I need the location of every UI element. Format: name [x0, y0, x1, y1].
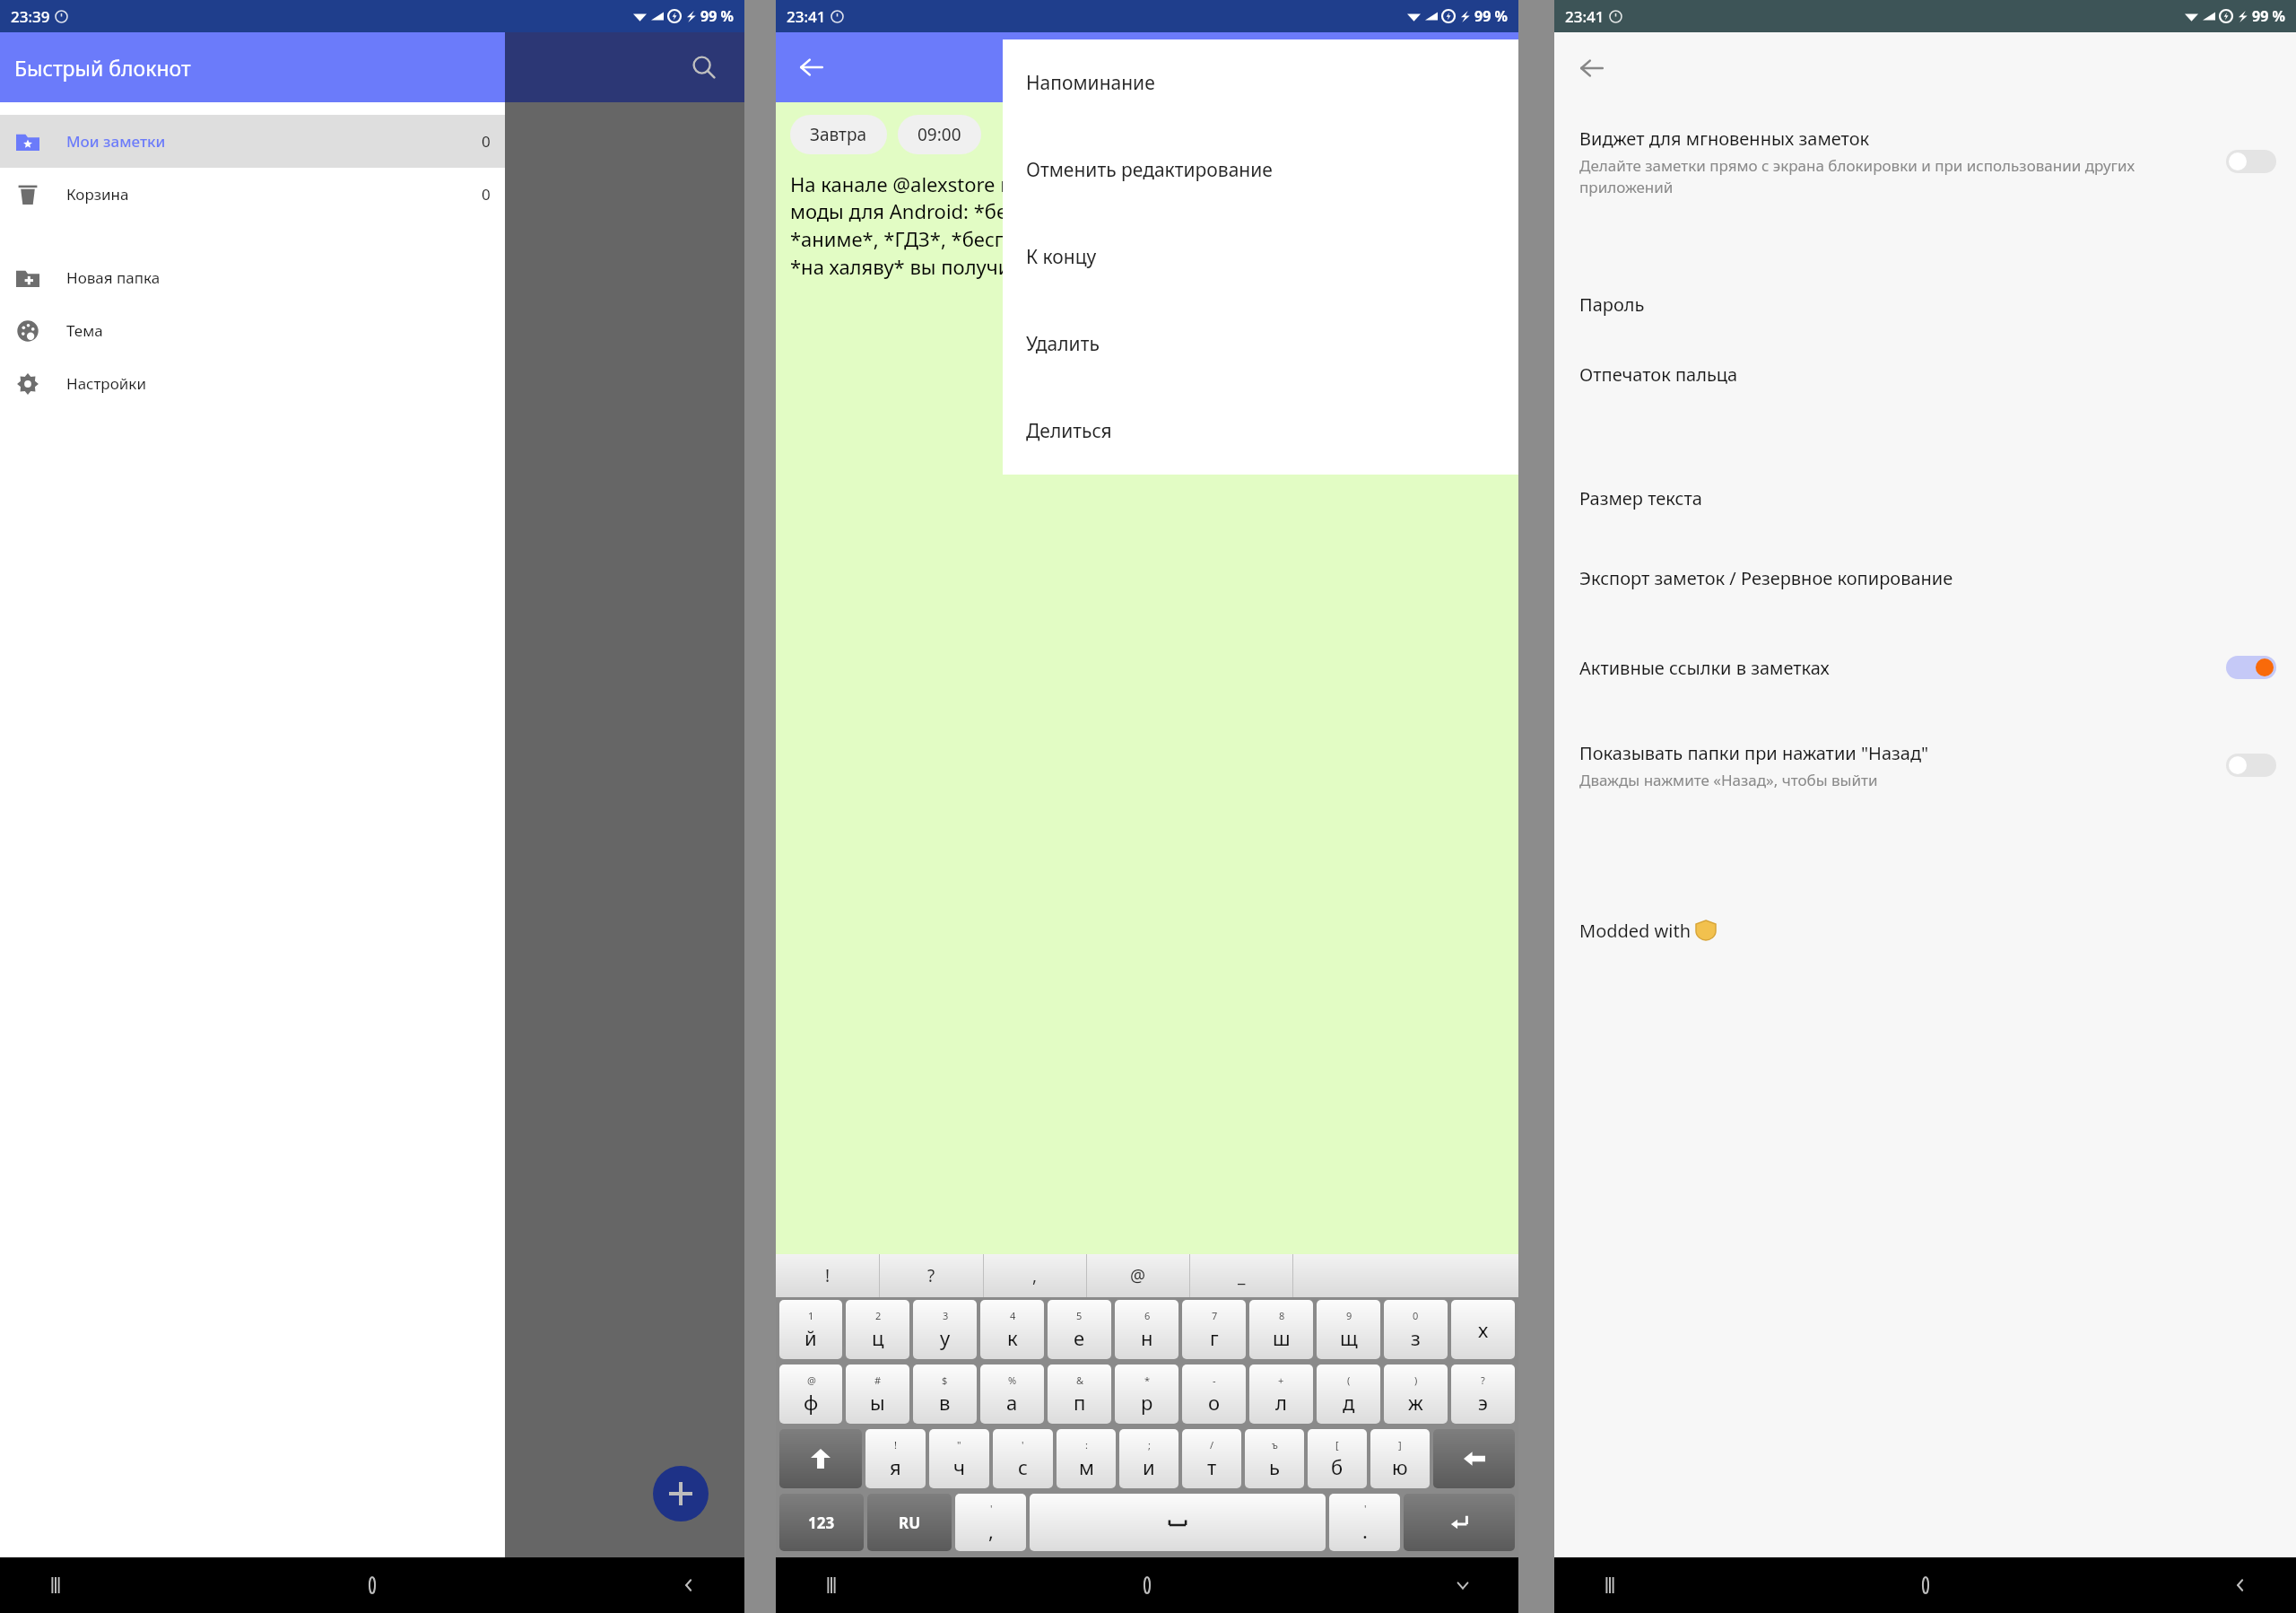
- staticText: #: [874, 1373, 882, 1387]
- button[interactable]: ': [993, 1429, 1053, 1488]
- staticText: з: [1411, 1324, 1421, 1351]
- button[interactable]: Отпечаток пальца: [1554, 339, 2296, 409]
- staticText: ж: [1408, 1389, 1423, 1416]
- button[interactable]: 7: [1182, 1300, 1246, 1359]
- button[interactable]: Удалить: [1003, 301, 1518, 388]
- button[interactable]: Back: [1572, 48, 1612, 88]
- button[interactable]: Key: [779, 1429, 862, 1488]
- staticText: 0: [1413, 1309, 1419, 1322]
- staticText: ': [990, 1502, 993, 1515]
- button[interactable]: Toggle: [2226, 150, 2276, 173]
- button[interactable]: (: [1317, 1365, 1380, 1424]
- button[interactable]: Home: [1127, 1565, 1167, 1605]
- button[interactable]: Back: [2221, 1565, 2260, 1605]
- button[interactable]: !: [776, 1254, 879, 1297]
- button[interactable]: Напоминание: [1003, 39, 1518, 126]
- staticText: 23:41: [1565, 6, 1605, 27]
- button[interactable]: Home: [1906, 1565, 1945, 1605]
- staticText: Показывать папки при нажатии "Назад": [1579, 741, 1929, 765]
- button[interactable]: #: [846, 1365, 909, 1424]
- button[interactable]: Настройки: [0, 357, 505, 410]
- button[interactable]: -: [1182, 1365, 1246, 1424]
- button[interactable]: Toggle: [2226, 656, 2276, 679]
- button[interactable]: $: [913, 1365, 977, 1424]
- button[interactable]: Back: [792, 48, 831, 87]
- button[interactable]: 9: [1317, 1300, 1380, 1359]
- button[interactable]: Key: [867, 1494, 952, 1551]
- staticText: 6: [1144, 1309, 1151, 1322]
- button[interactable]: Пароль: [1554, 269, 2296, 339]
- button[interactable]: Размер текста: [1554, 463, 2296, 533]
- button[interactable]: ': [955, 1494, 1026, 1551]
- button[interactable]: !: [865, 1429, 926, 1488]
- staticText: п: [1074, 1389, 1086, 1416]
- button[interactable]: Recents: [1590, 1565, 1630, 1605]
- button[interactable]: _: [1190, 1254, 1292, 1297]
- button[interactable]: Recents: [36, 1565, 75, 1605]
- button[interactable]: Back: [669, 1565, 709, 1605]
- button[interactable]: ": [929, 1429, 989, 1488]
- button[interactable]: @: [779, 1365, 842, 1424]
- button[interactable]: Экспорт заметок / Резервное копирование: [1554, 533, 2296, 623]
- button[interactable]: Отменить редактирование: [1003, 126, 1518, 214]
- staticText: 9: [1346, 1309, 1352, 1322]
- staticText: 5: [1076, 1309, 1083, 1322]
- button[interactable]: Search: [664, 32, 744, 102]
- button[interactable]: ]: [1370, 1429, 1430, 1488]
- button[interactable]: 8: [1249, 1300, 1313, 1359]
- button[interactable]: Hide keyboard: [1443, 1565, 1483, 1605]
- button[interactable]: х: [1451, 1300, 1515, 1359]
- button[interactable]: 2: [846, 1300, 909, 1359]
- button[interactable]: Key: [1433, 1429, 1515, 1488]
- button[interactable]: %: [980, 1365, 1044, 1424]
- staticText: Виджет для мгновенных заметок: [1579, 126, 1870, 151]
- button[interactable]: Key: [779, 1494, 864, 1551]
- button[interactable]: ;: [1119, 1429, 1178, 1488]
- staticText: 1: [808, 1309, 814, 1322]
- button[interactable]: Корзина: [0, 168, 505, 221]
- staticText: ": [957, 1438, 961, 1452]
- staticText: ф: [804, 1389, 819, 1416]
- button[interactable]: :: [1057, 1429, 1116, 1488]
- button[interactable]: Тема: [0, 304, 505, 357]
- button[interactable]: Завтра: [790, 115, 887, 154]
- button[interactable]: 6: [1115, 1300, 1178, 1359]
- button[interactable]: ,: [984, 1254, 1086, 1297]
- button[interactable]: 09:00: [898, 115, 981, 154]
- button[interactable]: Виджет для мгновенных заметок: [1554, 104, 2296, 219]
- button[interactable]: Key: [1404, 1494, 1515, 1551]
- button[interactable]: ъ: [1245, 1429, 1304, 1488]
- button[interactable]: 0: [1384, 1300, 1448, 1359]
- button[interactable]: Modded with: [1554, 899, 2296, 962]
- button[interactable]: Recents: [812, 1565, 851, 1605]
- staticText: 4: [1010, 1309, 1016, 1322]
- button[interactable]: [: [1308, 1429, 1367, 1488]
- button[interactable]: Space: [1030, 1494, 1326, 1551]
- button[interactable]: К концу: [1003, 214, 1518, 301]
- button[interactable]: Активные ссылки в заметках: [1554, 623, 2296, 712]
- button[interactable]: @: [1087, 1254, 1189, 1297]
- button[interactable]: ': [1329, 1494, 1400, 1551]
- button[interactable]: Toggle: [2226, 754, 2276, 777]
- staticText: к: [1007, 1324, 1018, 1351]
- button[interactable]: 3: [913, 1300, 977, 1359]
- button[interactable]: Add note: [653, 1466, 709, 1521]
- staticText: и: [1143, 1453, 1155, 1480]
- button[interactable]: 5: [1048, 1300, 1111, 1359]
- button[interactable]: Мои заметки: [0, 115, 505, 168]
- button[interactable]: Делиться: [1003, 388, 1518, 475]
- button[interactable]: ?: [880, 1254, 983, 1297]
- button[interactable]: ?: [1451, 1365, 1515, 1424]
- button[interactable]: *: [1115, 1365, 1178, 1424]
- button[interactable]: 4: [980, 1300, 1044, 1359]
- button[interactable]: ): [1384, 1365, 1448, 1424]
- button[interactable]: 1: [779, 1300, 842, 1359]
- button[interactable]: Home: [352, 1565, 392, 1605]
- staticText: 99 %: [1474, 6, 1508, 26]
- button[interactable]: /: [1182, 1429, 1241, 1488]
- button[interactable]: Показывать папки при нажатии "Назад": [1554, 712, 2296, 818]
- button[interactable]: Новая папка: [0, 251, 505, 304]
- button[interactable]: &: [1048, 1365, 1111, 1424]
- button[interactable]: +: [1249, 1365, 1313, 1424]
- staticText: Modded with: [1579, 919, 1696, 943]
